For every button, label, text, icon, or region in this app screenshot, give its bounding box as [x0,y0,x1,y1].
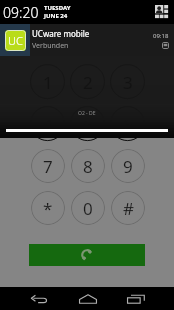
staticText: 9 [123,155,133,178]
staticText: O2 - DE [78,110,96,117]
button[interactable]: Recents [118,287,154,310]
button[interactable]: 4 [31,107,65,141]
button[interactable]: * [31,191,65,225]
button[interactable]: # [111,191,145,225]
button[interactable]: Home [70,287,106,310]
staticText: UC [8,33,23,48]
staticText: 5 [83,113,93,136]
staticText: TUESDAY [44,4,71,12]
staticText: 09:18 [153,32,169,40]
button[interactable]: 7 [31,149,65,183]
staticText: 0 [83,197,93,220]
staticText: 8 [83,155,93,178]
staticText: UCware mobile [32,28,90,39]
staticText: 7 [43,155,53,178]
staticText: 4 [43,113,53,136]
staticText: 6 [123,113,133,136]
button[interactable]: Call [29,244,145,266]
staticText: 09:20 [3,3,39,22]
button[interactable]: 6 [111,107,145,141]
button[interactable]: Back [21,287,57,310]
button[interactable]: 5 [71,107,105,141]
staticText: 4 [43,113,53,136]
button[interactable]: Quick settings [155,5,169,19]
button[interactable]: 8 [71,149,105,183]
staticText: # [123,197,134,220]
staticText: JUNE 24 [44,12,68,20]
staticText: 5 [83,113,93,136]
staticText: * [43,197,53,220]
staticText: 6 [123,113,133,136]
button[interactable]: 0 [71,191,105,225]
staticText: Verbunden [32,41,69,51]
button[interactable]: 9 [111,149,145,183]
